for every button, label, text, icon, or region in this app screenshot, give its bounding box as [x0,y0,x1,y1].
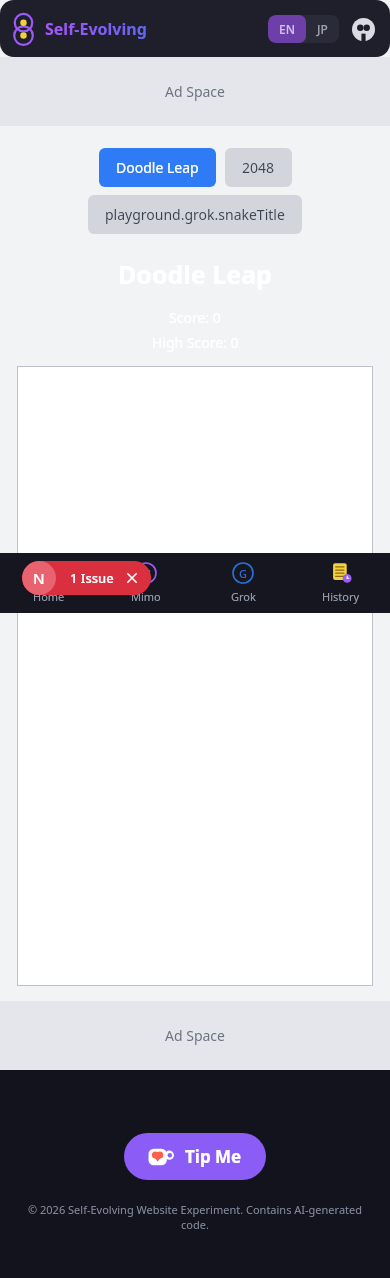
staticText: © 2026 Self-Evolving Website Experiment.… [18,1202,372,1232]
button[interactable]: Home [0,553,97,613]
button[interactable]: JP [306,15,339,43]
staticText: M [141,566,152,581]
button[interactable]: Tip Me [124,1133,266,1180]
other: Dismiss [125,571,139,585]
staticText: Doodle Leap [118,257,272,291]
button[interactable]: EN [268,15,306,43]
staticText: History [322,589,360,604]
button[interactable]: M [97,553,194,613]
staticText: JP [317,21,328,37]
staticText: Ad Space [165,1026,225,1045]
staticText: Grok [231,589,256,604]
staticText: High Score: 0 [152,333,239,352]
staticText: Self-Evolving [45,18,147,40]
button[interactable]: N [22,561,151,595]
button[interactable]: Self-Evolving [14,14,147,44]
button[interactable]: GitHub [350,16,376,42]
staticText: EN [279,21,295,37]
button[interactable]: Doodle Leap [99,148,216,187]
button[interactable]: 2048 [225,148,292,187]
button[interactable]: playground.grok.snakeTitle [88,195,302,234]
button[interactable]: G [194,553,292,613]
staticText: playground.grok.snakeTitle [105,205,285,224]
staticText: Score: 0 [169,308,221,327]
staticText: Doodle Leap [116,158,199,177]
staticText: Ad Space [165,82,225,101]
staticText: 2048 [242,158,275,177]
staticText: N [33,568,45,588]
staticText: Tip Me [185,1145,242,1168]
staticText: 1 Issue [70,569,114,587]
staticText: Mimo [131,589,161,604]
staticText: Home [33,589,65,604]
staticText: G [239,566,247,581]
button[interactable]: History [292,553,390,613]
